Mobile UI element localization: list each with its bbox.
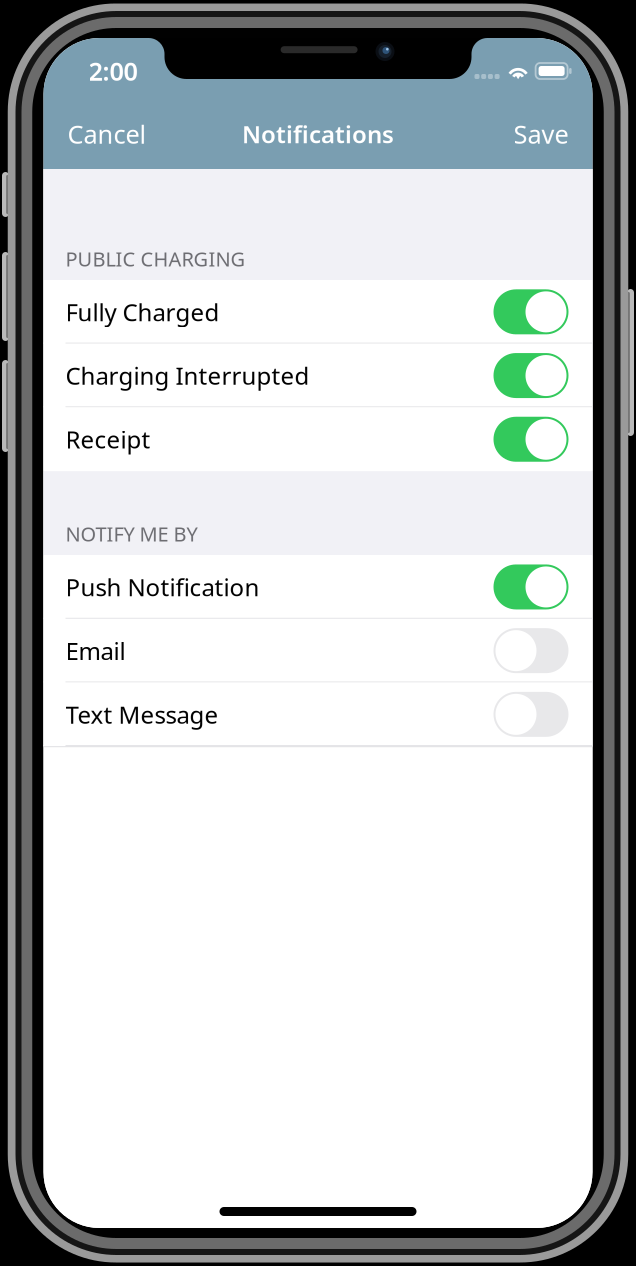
button[interactable]: Cancel [61, 107, 152, 161]
staticText: Text Message [65, 698, 218, 730]
button[interactable]: Fully Charged [43, 280, 592, 344]
button[interactable]: Charging Interrupted [43, 344, 592, 407]
staticText: Notifications [242, 118, 394, 150]
staticText: 2:00 [88, 54, 137, 88]
button[interactable]: Email [43, 619, 592, 682]
button[interactable]: Save [507, 107, 574, 161]
button[interactable]: Receipt [43, 407, 592, 471]
staticText: Fully Charged [65, 296, 219, 328]
button[interactable]: Text Message [43, 682, 592, 746]
staticText: Cancel [67, 117, 146, 151]
staticText: Save [513, 117, 568, 151]
button[interactable]: Push Notification [43, 555, 592, 619]
staticText: PUBLIC CHARGING [65, 245, 245, 272]
staticText: Email [65, 635, 125, 667]
staticText: Push Notification [65, 571, 259, 603]
staticText: NOTIFY ME BY [65, 520, 197, 547]
staticText: Receipt [65, 423, 150, 455]
staticText: Charging Interrupted [65, 360, 309, 391]
